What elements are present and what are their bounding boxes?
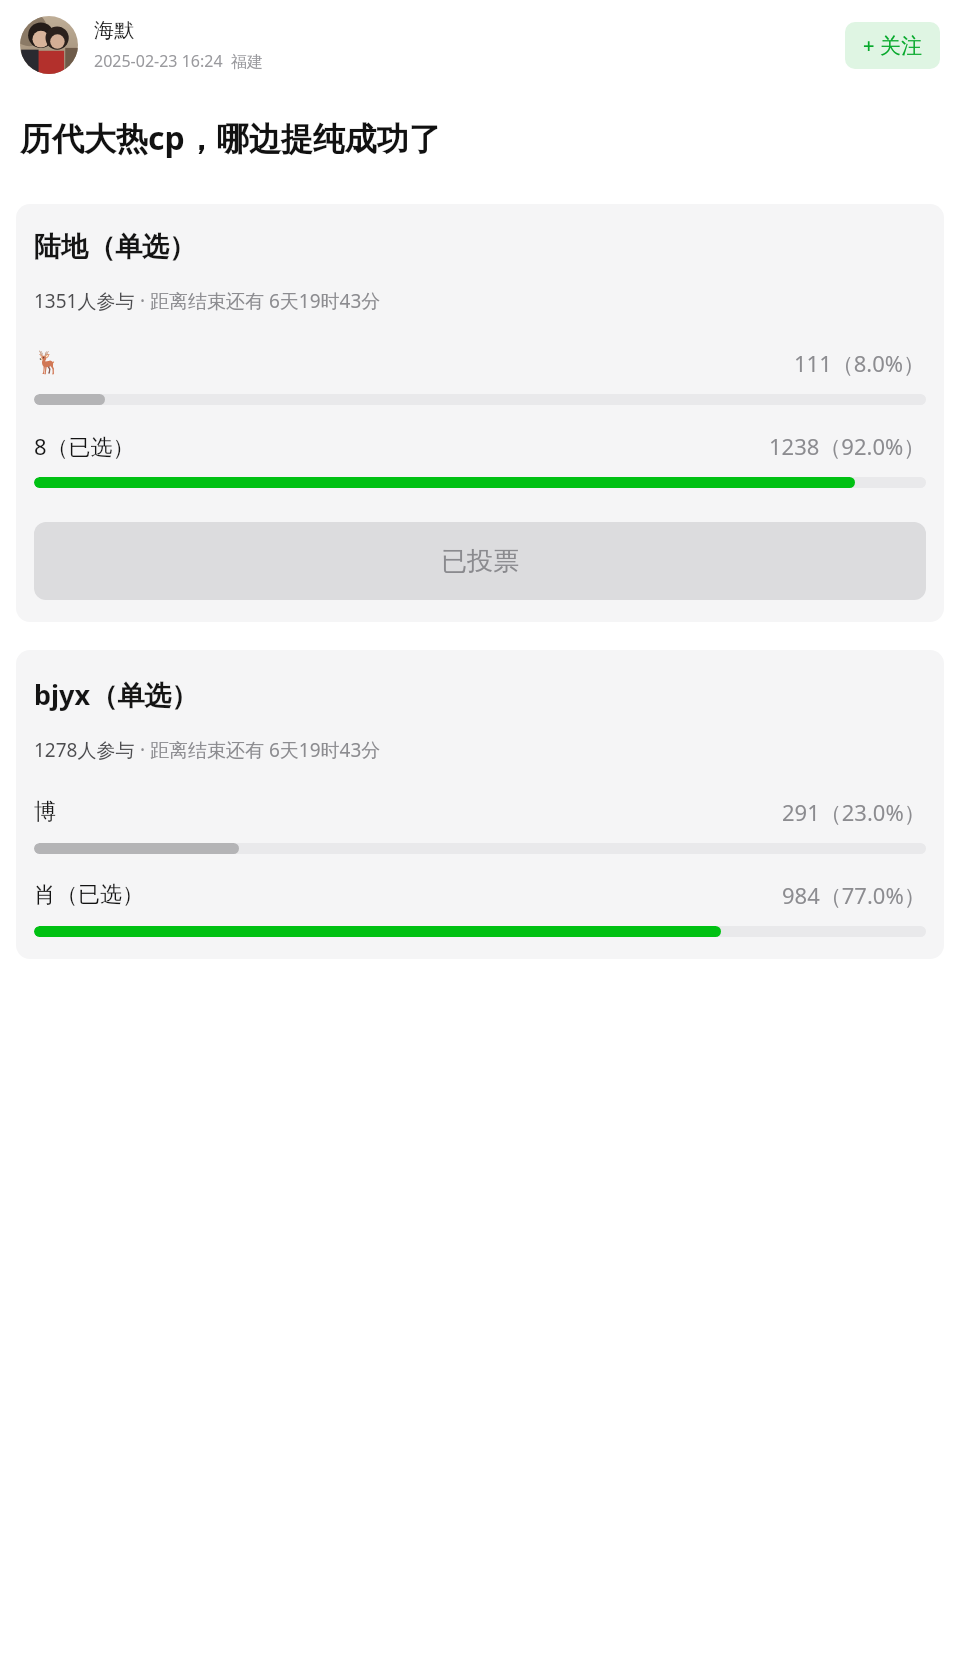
staticText: 1278人参与 [34,737,135,763]
button[interactable]: bjyx（单选） [16,650,944,959]
staticText: 关注 [880,33,922,59]
staticText: 历代大热cp，哪边提纯成功了 [20,116,441,160]
staticText: 🦌 [34,350,62,376]
staticText: bjyx（单选） [34,676,199,713]
staticText: 陆地（单选） [34,230,196,264]
staticText: 1238（92.0%） [769,431,926,461]
button[interactable]: 肖（已选） [34,880,926,910]
staticText: · 距离结束还有 6天19时43分 [135,737,381,763]
button[interactable]: + [845,22,940,69]
button[interactable]: 陆地（单选） [16,204,944,622]
staticText: 984（77.0%） [782,880,926,910]
button[interactable]: 🦌 [34,348,926,378]
staticText: 2025-02-23 16:24 福建 [94,50,263,72]
button[interactable]: 博 [34,797,926,827]
button[interactable]: 8（已选） [34,431,926,461]
staticText: 1351人参与 [34,288,135,314]
staticText: 已投票 [441,545,519,578]
staticText: 肖（已选） [34,881,144,909]
staticText: 8（已选） [34,431,135,461]
button[interactable]: User avatar [20,16,78,74]
staticText: 博 [34,798,56,826]
button[interactable]: 已投票 [34,522,926,600]
staticText: 海默 [94,18,134,43]
staticText: 291（23.0%） [782,797,926,827]
staticText: · 距离结束还有 6天19时43分 [135,288,381,314]
staticText: + [863,32,875,59]
staticText: 111（8.0%） [794,348,926,378]
